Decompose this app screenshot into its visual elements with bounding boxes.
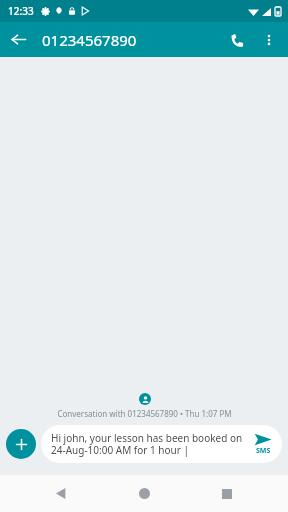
button[interactable]: Back [39,475,83,512]
staticText: 01234567890 [42,30,137,50]
button[interactable]: Call [220,23,254,57]
button[interactable]: Home [122,475,166,512]
button[interactable]: Back [0,22,36,57]
button[interactable]: More options [254,25,284,55]
button[interactable]: Send SMS [248,433,278,456]
staticText: SMS [256,446,271,456]
staticText: 12:33 [8,4,34,18]
staticText: Hi john, your lesson has been booked on … [51,431,246,457]
button[interactable]: Hi john, your lesson has been booked on … [41,425,282,463]
staticText: Conversation with 01234567890 • Thu 1:07… [57,408,232,419]
button[interactable]: Recent apps [205,475,249,512]
button[interactable]: Add attachment [6,429,36,459]
